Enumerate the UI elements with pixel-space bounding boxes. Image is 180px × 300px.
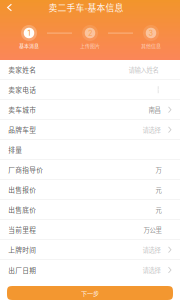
staticText: 元	[155, 205, 161, 214]
button[interactable]: 上牌时间	[0, 240, 180, 260]
staticText: 3	[148, 29, 153, 37]
button[interactable]: Back	[0, 0, 19, 15]
staticText: 元	[155, 185, 161, 194]
staticText: 请选择	[142, 125, 160, 134]
staticText: 1	[27, 29, 30, 37]
staticText: 出售报价	[8, 185, 36, 195]
button[interactable]: 出售底价	[0, 200, 180, 220]
staticText: 卖家姓名	[8, 65, 36, 75]
staticText: 万	[155, 165, 161, 174]
staticText: 品牌车型	[8, 125, 36, 135]
staticText: 厂商指导价	[8, 165, 43, 175]
staticText: 当前里程	[8, 225, 36, 235]
button[interactable]: 下一步	[7, 286, 173, 300]
button[interactable]: 排量	[0, 140, 180, 160]
staticText: 下一步	[81, 289, 99, 297]
staticText: 基本消息	[19, 42, 39, 49]
staticText: 卖车城市	[8, 105, 36, 115]
button[interactable]: 当前里程	[0, 220, 180, 240]
staticText: 请选择	[142, 245, 160, 254]
button[interactable]: 出厂日期	[0, 260, 180, 280]
staticText: 其他信息	[141, 42, 161, 49]
staticText: 上牌时间	[8, 245, 36, 255]
staticText: 卖二手车-基本信息	[48, 1, 123, 14]
staticText: 卖家电话	[8, 85, 36, 95]
button[interactable]: 品牌车型	[0, 120, 180, 140]
staticText: 南昌	[148, 105, 160, 114]
staticText: 万公里	[143, 225, 161, 234]
button[interactable]: 卖家姓名	[0, 60, 180, 80]
staticText: 出售底价	[8, 205, 36, 215]
button[interactable]: 出售报价	[0, 180, 180, 200]
staticText: 请输入姓名	[128, 65, 158, 74]
staticText: 出厂日期	[8, 265, 36, 275]
staticText: 请选择	[142, 265, 160, 275]
staticText: 2	[88, 29, 92, 37]
button[interactable]: 卖家电话	[0, 80, 180, 100]
staticText: 上传图片	[80, 42, 100, 49]
staticText: 排量	[8, 145, 22, 155]
button[interactable]: 厂商指导价	[0, 160, 180, 180]
button[interactable]: 卖车城市	[0, 100, 180, 120]
